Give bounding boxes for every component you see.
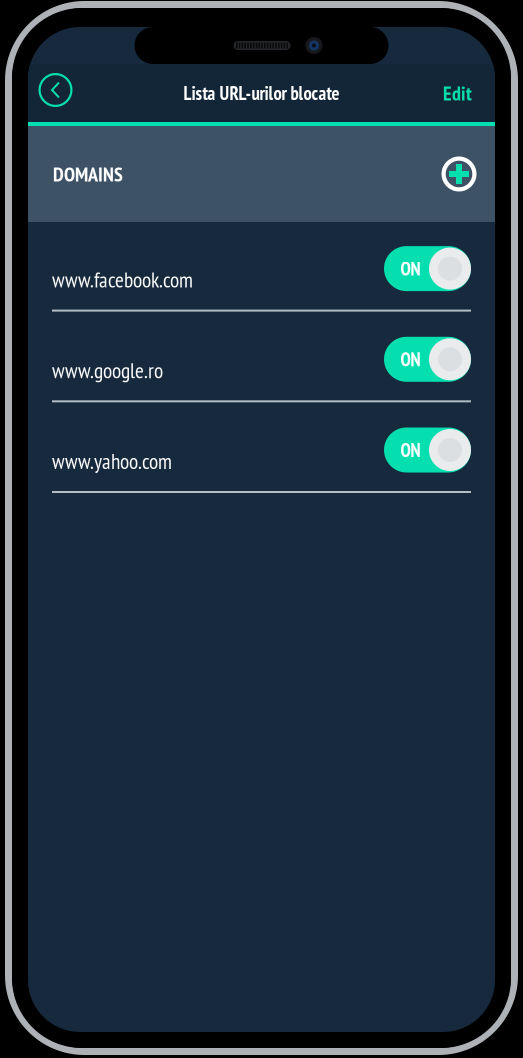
staticText: www.google.ro xyxy=(52,356,163,384)
button[interactable]: Add domain xyxy=(435,150,483,198)
staticText: DOMAINS xyxy=(53,161,123,187)
staticText: ON xyxy=(400,256,420,281)
button[interactable]: Back xyxy=(32,70,78,116)
staticText: ON xyxy=(400,347,420,371)
button[interactable]: www.google.ro xyxy=(28,318,495,409)
staticText: www.facebook.com xyxy=(52,266,193,293)
button[interactable]: www.facebook.com xyxy=(28,228,495,318)
staticText: Lista URL-urilor blocate xyxy=(183,81,339,105)
button[interactable]: Edit xyxy=(437,70,478,116)
staticText: ON xyxy=(400,438,420,462)
button[interactable]: www.yahoo.com xyxy=(28,409,495,500)
staticText: Edit xyxy=(443,80,472,106)
staticText: www.yahoo.com xyxy=(52,447,172,475)
